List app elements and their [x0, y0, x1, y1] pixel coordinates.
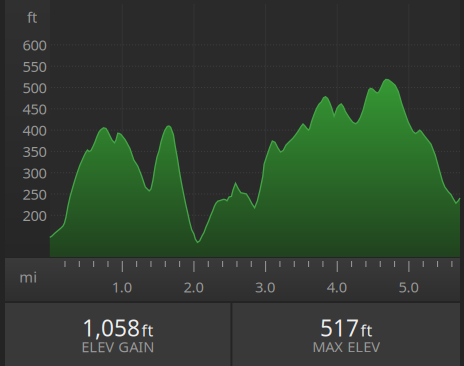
staticText: 2.0 [183, 277, 203, 297]
staticText: 450 [23, 99, 47, 119]
staticText: 4.0 [327, 277, 347, 297]
button[interactable]: 517 [232, 303, 460, 366]
staticText: 550 [23, 56, 47, 76]
staticText: ft [360, 320, 372, 341]
staticText: 1.0 [112, 277, 132, 297]
staticText: 600 [23, 35, 47, 55]
staticText: 400 [23, 120, 47, 140]
staticText: 300 [23, 163, 47, 182]
staticText: 5.0 [398, 277, 418, 297]
staticText: ft [141, 320, 153, 341]
staticText: ft [27, 7, 37, 27]
button[interactable]: 1,058 [5, 303, 230, 366]
staticText: 3.0 [255, 277, 275, 297]
staticText: 517 [320, 313, 359, 343]
staticText: ELEV GAIN [81, 337, 154, 356]
staticText: 1,058 [82, 313, 140, 343]
staticText: MAX ELEV [312, 337, 380, 356]
staticText: 350 [23, 142, 47, 161]
staticText: 500 [23, 78, 47, 97]
staticText: 200 [23, 206, 47, 225]
staticText: 250 [23, 184, 47, 204]
staticText: mi [19, 267, 37, 286]
